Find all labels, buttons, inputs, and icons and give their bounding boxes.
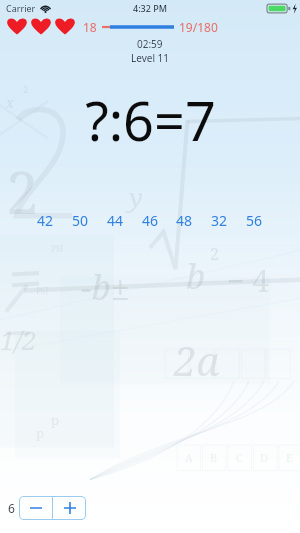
staticText: 32 bbox=[211, 211, 228, 230]
staticText: 46 bbox=[142, 211, 159, 230]
button[interactable]: 32 bbox=[210, 209, 229, 232]
staticText: y bbox=[129, 179, 143, 214]
staticText: E bbox=[286, 450, 293, 465]
staticText: 2 bbox=[210, 243, 219, 265]
staticText: b bbox=[186, 253, 206, 299]
staticText: 18 bbox=[83, 19, 97, 35]
staticText: 2 bbox=[6, 152, 39, 231]
staticText: 19/180 bbox=[179, 19, 218, 35]
staticText: p bbox=[36, 424, 44, 442]
button[interactable]: 42 bbox=[36, 209, 55, 232]
staticText: 2 bbox=[23, 83, 29, 95]
button[interactable]: Decrease bbox=[19, 496, 52, 520]
staticText: 4:32 PM bbox=[133, 2, 167, 14]
staticText: 44 bbox=[107, 211, 124, 230]
staticText: 02:59 bbox=[137, 37, 163, 51]
staticText: 48 bbox=[176, 211, 193, 230]
button[interactable]: 46 bbox=[141, 209, 160, 232]
staticText: 50 bbox=[72, 211, 89, 230]
button[interactable]: Increase bbox=[53, 496, 86, 520]
button[interactable]: 44 bbox=[106, 209, 125, 232]
staticText: B bbox=[210, 450, 218, 465]
staticText: 56 bbox=[246, 211, 263, 230]
staticText: − 4 bbox=[227, 260, 269, 301]
staticText: PSI bbox=[51, 243, 64, 254]
staticText: x bbox=[6, 93, 14, 112]
button[interactable]: 50 bbox=[71, 209, 90, 232]
staticText: 2a bbox=[174, 333, 220, 387]
staticText: ?:6=7 bbox=[85, 83, 216, 157]
staticText: p bbox=[51, 411, 59, 429]
staticText: 6 bbox=[8, 500, 15, 516]
staticText: Carrier bbox=[6, 2, 36, 14]
staticText: −b± bbox=[81, 264, 130, 310]
staticText: D bbox=[260, 450, 268, 465]
staticText: 42 bbox=[37, 211, 54, 230]
button[interactable]: 48 bbox=[175, 209, 194, 232]
staticText: A bbox=[185, 450, 193, 465]
staticText: Level 11 bbox=[131, 51, 170, 65]
staticText: PSI bbox=[36, 285, 49, 296]
staticText: C bbox=[236, 450, 243, 465]
staticText: 1/2 bbox=[0, 322, 37, 357]
button[interactable]: 56 bbox=[245, 209, 264, 232]
